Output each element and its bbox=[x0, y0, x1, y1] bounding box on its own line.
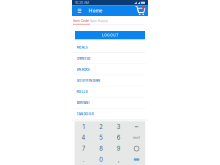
staticText: 1 bbox=[82, 123, 84, 130]
button[interactable]: 9 bbox=[110, 143, 128, 154]
staticText: 9 bbox=[117, 145, 121, 152]
staticText: TANDOOR bbox=[77, 112, 94, 116]
button[interactable]: Cart bbox=[135, 5, 145, 16]
button[interactable]: Dash bbox=[128, 121, 145, 132]
staticText: SNACKS bbox=[77, 67, 90, 71]
button[interactable]: TANDOOR bbox=[72, 109, 148, 120]
button[interactable]: 2 bbox=[92, 121, 110, 132]
button[interactable]: CHINESE bbox=[72, 53, 148, 64]
staticText: , bbox=[118, 156, 120, 163]
button[interactable]: BIRYANI bbox=[72, 97, 148, 109]
staticText: 8 bbox=[99, 145, 103, 152]
button[interactable]: 5 bbox=[92, 132, 110, 143]
staticText: Item Name bbox=[90, 19, 108, 23]
button[interactable]: , bbox=[110, 154, 128, 165]
button[interactable]: Delete bbox=[128, 143, 145, 154]
button[interactable]: 1 bbox=[75, 121, 92, 132]
staticText: CHINESE bbox=[77, 56, 91, 60]
staticText: MEALS bbox=[77, 45, 88, 49]
staticText: . bbox=[82, 156, 84, 163]
button[interactable]: Menu bbox=[75, 5, 84, 16]
staticText: LOGOUT bbox=[102, 33, 118, 37]
button[interactable]: 7 bbox=[75, 143, 92, 154]
staticText: Home bbox=[88, 8, 102, 14]
staticText: 6 bbox=[117, 134, 121, 141]
staticText: 5 bbox=[99, 134, 103, 141]
button[interactable]: MEALS bbox=[72, 42, 148, 53]
button[interactable]: LOGOUT bbox=[75, 31, 145, 39]
button[interactable]: SOUTH INDIAN bbox=[72, 75, 148, 86]
button[interactable]: 4 bbox=[75, 132, 92, 143]
staticText: 0 bbox=[99, 156, 103, 163]
staticText: Item Code bbox=[73, 19, 89, 23]
staticText: ROLLS bbox=[77, 90, 88, 94]
staticText: 2 bbox=[99, 123, 103, 130]
staticText: 4 bbox=[81, 134, 85, 141]
staticText: BIRYANI bbox=[77, 101, 90, 105]
staticText: next bbox=[133, 136, 140, 139]
button[interactable]: 8 bbox=[92, 143, 110, 154]
staticText: 3 bbox=[117, 123, 121, 130]
staticText: 7 bbox=[82, 145, 85, 152]
button[interactable]: 0 bbox=[92, 154, 110, 165]
button[interactable]: Go bbox=[128, 154, 145, 165]
staticText: 10:30 AM bbox=[75, 1, 89, 5]
button[interactable]: ROLLS bbox=[72, 86, 148, 97]
button[interactable]: SNACKS bbox=[72, 64, 148, 75]
button[interactable]: Next bbox=[128, 132, 145, 143]
button[interactable]: . bbox=[75, 154, 92, 165]
button[interactable]: 3 bbox=[110, 121, 128, 132]
button[interactable]: 6 bbox=[110, 132, 128, 143]
staticText: SOUTH INDIAN bbox=[77, 79, 101, 83]
